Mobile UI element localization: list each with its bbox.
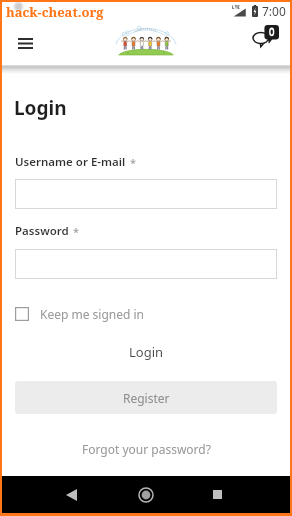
button[interactable] (15, 179, 277, 209)
button[interactable] (15, 249, 277, 279)
staticText: * (130, 155, 137, 170)
staticText: Login (14, 95, 67, 121)
staticText: hack-cheat.org (6, 3, 104, 21)
staticText: Username or E-mail (15, 154, 126, 170)
button[interactable]: Keep me signed in (15, 306, 144, 322)
staticText: Register (123, 390, 170, 406)
staticText: 7:00 (262, 3, 286, 19)
staticText: Forgot your password? (82, 441, 211, 457)
button[interactable]: Back (49, 476, 93, 513)
staticText: * (73, 224, 80, 239)
staticText: Password (15, 223, 69, 239)
button[interactable]: Messages (249, 17, 283, 51)
button[interactable]: Home (124, 476, 168, 513)
button[interactable]: Login (105, 338, 188, 366)
button[interactable]: Recent apps (195, 476, 239, 513)
staticText: Keep me signed in (40, 306, 144, 322)
button[interactable]: Forgot your password? (70, 436, 223, 462)
staticText: Login (129, 343, 164, 361)
button[interactable]: Open navigation menu (9, 27, 41, 59)
button[interactable]: Register (15, 381, 277, 414)
